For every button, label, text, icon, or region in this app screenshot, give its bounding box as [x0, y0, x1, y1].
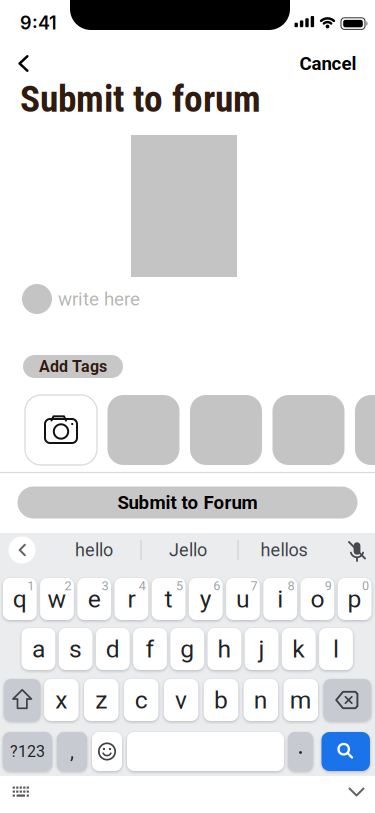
button[interactable]: q	[3, 578, 37, 620]
staticText: m	[290, 685, 312, 714]
button[interactable]: s	[59, 628, 92, 670]
button[interactable]: Keyboard settings	[5, 780, 37, 804]
staticText: hello	[75, 539, 113, 561]
staticText: hellos	[260, 539, 307, 561]
button[interactable]: t	[152, 578, 185, 620]
button[interactable]: e	[77, 578, 111, 620]
button[interactable]: y	[189, 578, 223, 620]
staticText: n	[254, 685, 268, 714]
button[interactable]: Dismiss keyboard	[345, 782, 367, 801]
button[interactable]: w	[40, 578, 74, 620]
staticText: a	[32, 634, 45, 663]
staticText: Jello	[169, 539, 207, 561]
button[interactable]: n	[244, 679, 278, 721]
button[interactable]: Search	[321, 732, 370, 771]
button[interactable]: b	[204, 679, 238, 721]
staticText: 8	[288, 579, 295, 593]
staticText: e	[88, 584, 101, 613]
staticText: t	[165, 584, 173, 613]
button[interactable]: h	[207, 628, 241, 670]
staticText: w	[47, 584, 66, 613]
button[interactable]: u	[226, 578, 260, 620]
button[interactable]: x	[44, 679, 79, 721]
button[interactable]: r	[114, 578, 148, 620]
staticText: l	[333, 634, 339, 663]
button[interactable]: k	[282, 628, 316, 670]
staticText: Cancel	[299, 53, 356, 74]
button[interactable]: hellos	[240, 533, 328, 567]
staticText: 9	[325, 579, 332, 593]
button[interactable]: m	[283, 679, 318, 721]
button[interactable]: z	[84, 679, 118, 721]
staticText: r	[127, 584, 135, 613]
staticText: v	[175, 685, 187, 714]
staticText: f	[145, 634, 154, 663]
staticText: Add Tags	[39, 357, 107, 376]
staticText: 1	[27, 579, 34, 593]
staticText: 2	[64, 579, 71, 593]
button[interactable]: Delete	[324, 679, 371, 721]
button[interactable]: Shift	[4, 679, 40, 721]
button[interactable]: g	[170, 628, 204, 670]
staticText: 4	[139, 579, 146, 593]
button[interactable]: i	[263, 578, 297, 620]
button[interactable]: ,	[57, 732, 87, 771]
button[interactable]: d	[96, 628, 130, 670]
button[interactable]: Voice input off	[340, 534, 374, 568]
staticText: o	[310, 584, 324, 613]
staticText: d	[106, 634, 120, 663]
staticText: j	[259, 634, 265, 663]
button[interactable]: Expand	[8, 536, 35, 563]
staticText: b	[214, 685, 228, 714]
staticText: 9:41	[20, 12, 57, 34]
button[interactable]: Jello	[144, 533, 232, 567]
button[interactable]: hello	[50, 533, 138, 567]
staticText: 0	[362, 579, 369, 593]
staticText: q	[13, 584, 27, 613]
staticText: Submit to forum	[20, 77, 261, 121]
staticText: s	[69, 634, 82, 663]
button[interactable]: j	[245, 628, 278, 670]
staticText: c	[135, 685, 148, 714]
staticText: write here	[58, 288, 140, 310]
button[interactable]: a	[21, 628, 55, 670]
button[interactable]: v	[164, 679, 198, 721]
staticText: Submit to Forum	[117, 492, 257, 513]
staticText: 6	[213, 579, 220, 593]
button[interactable]: Take photo	[25, 395, 97, 465]
staticText: h	[217, 634, 231, 663]
staticText: ?123	[10, 742, 45, 761]
button[interactable]: p	[338, 578, 371, 620]
staticText: z	[95, 685, 107, 714]
staticText: 3	[102, 579, 109, 593]
staticText: ,	[70, 740, 74, 763]
staticText: k	[292, 634, 305, 663]
staticText: p	[348, 584, 362, 613]
staticText: 7	[250, 579, 257, 593]
button[interactable]: o	[300, 578, 334, 620]
button[interactable]: Cancel	[299, 53, 356, 74]
staticText: i	[277, 584, 283, 613]
staticText: 5	[176, 579, 183, 593]
button[interactable]: Back	[0, 36, 44, 91]
staticText: g	[180, 634, 194, 663]
button[interactable]: c	[124, 679, 158, 721]
button[interactable]: Submit to Forum	[17, 486, 357, 518]
button[interactable]: l	[319, 628, 353, 670]
button[interactable]: Emoji	[92, 732, 122, 771]
staticText: u	[236, 584, 250, 613]
button[interactable]: Period	[288, 732, 313, 771]
button[interactable]: ?123	[3, 732, 52, 771]
staticText: y	[200, 584, 212, 613]
button[interactable]: f	[133, 628, 167, 670]
button[interactable]: Add Tags	[23, 355, 123, 378]
staticText: x	[55, 685, 67, 714]
